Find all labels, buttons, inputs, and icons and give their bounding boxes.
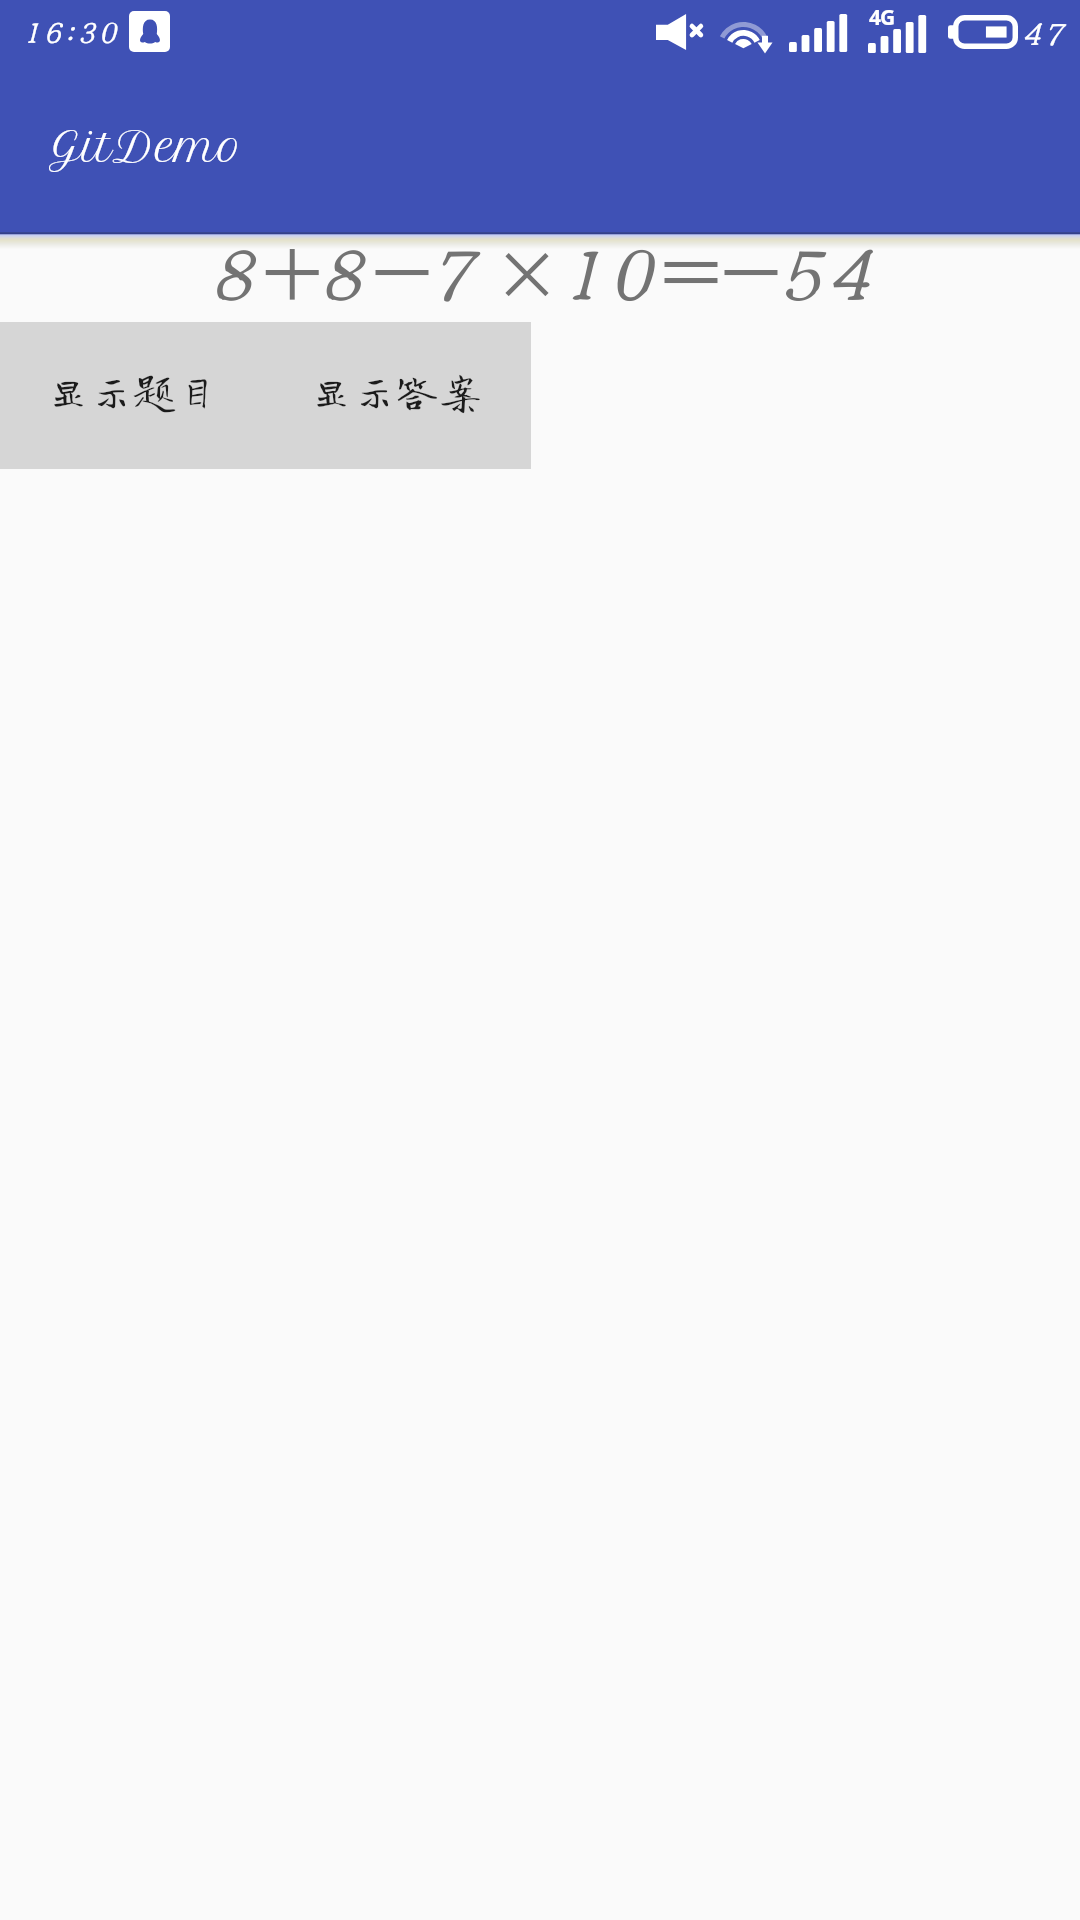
other: Wi-Fi connected xyxy=(717,7,777,55)
staticText: 8＋8－7 ×10＝－54 xyxy=(0,214,1080,302)
staticText: 16:30 xyxy=(21,8,119,51)
other: Mobile signal xyxy=(789,14,847,52)
button[interactable]: 显示题目 xyxy=(0,322,263,469)
staticText: 4G xyxy=(869,3,895,32)
staticText: GitDemo xyxy=(49,122,243,172)
other: Battery 47 percent xyxy=(948,15,1018,49)
other: Mobile signal xyxy=(868,15,926,53)
staticText: 显示题目 xyxy=(47,369,219,412)
staticText: 47 xyxy=(1021,8,1064,54)
button[interactable]: 显示答案 xyxy=(263,322,531,469)
staticText: 显示答案 xyxy=(310,369,482,412)
other: Silent mode xyxy=(656,14,703,50)
